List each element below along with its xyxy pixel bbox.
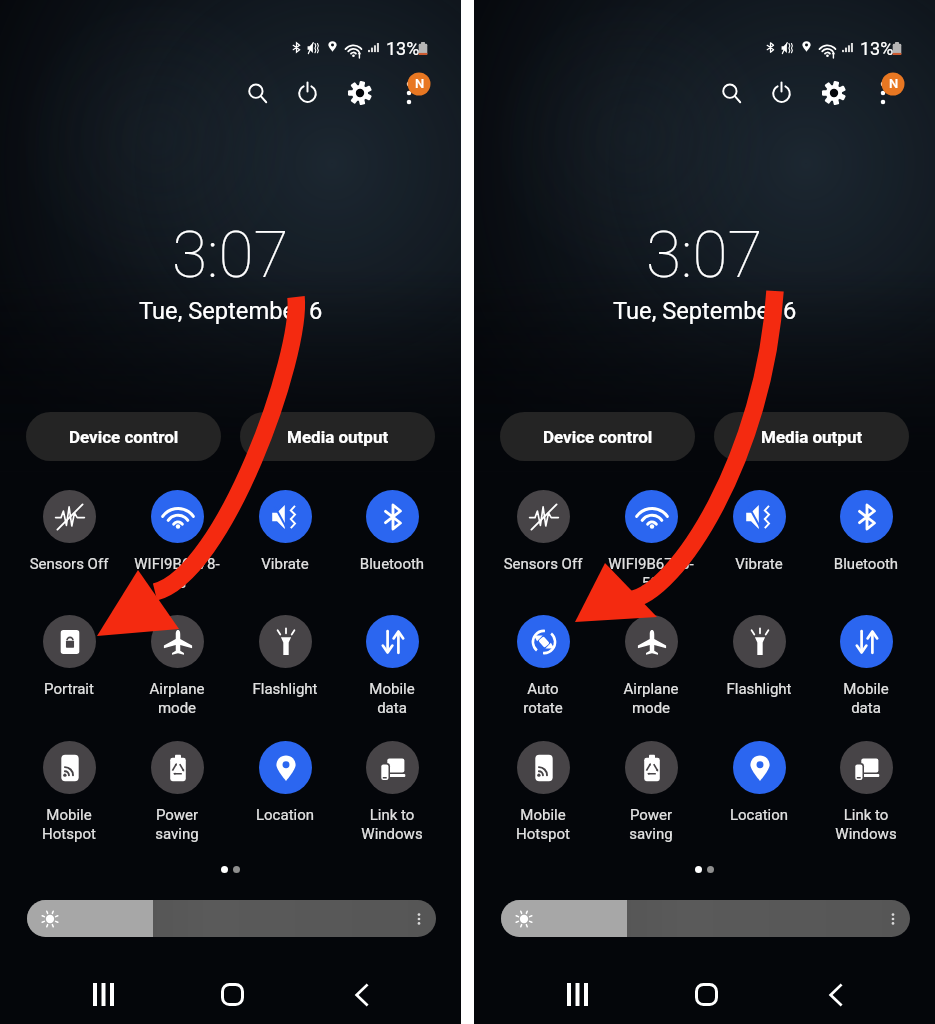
button[interactable]: [517, 490, 570, 543]
staticText: Airplane mode: [124, 680, 230, 717]
staticText: Mobile Hotspot: [490, 806, 596, 843]
button[interactable]: [366, 615, 419, 668]
staticText: 3:07: [172, 218, 289, 293]
button[interactable]: Settings: [340, 73, 380, 113]
staticText: Power saving: [124, 806, 230, 843]
button[interactable]: Brightness: [501, 900, 910, 937]
button[interactable]: [43, 490, 96, 543]
staticText: Device control: [69, 427, 179, 447]
button[interactable]: [151, 615, 204, 668]
button[interactable]: Page 1: [221, 866, 228, 873]
button[interactable]: Page 2: [707, 866, 714, 873]
button[interactable]: Page 2: [233, 866, 240, 873]
staticText: Location: [706, 806, 812, 824]
staticText: Flashlight: [232, 680, 338, 698]
button[interactable]: [259, 741, 312, 794]
button[interactable]: [517, 741, 570, 794]
staticText: Airplane mode: [598, 680, 704, 717]
staticText: 13%: [860, 38, 894, 59]
staticText: N: [889, 76, 899, 91]
button[interactable]: More options: [863, 73, 903, 113]
button[interactable]: [840, 741, 893, 794]
button[interactable]: Media output: [714, 412, 909, 461]
staticText: Bluetooth: [339, 555, 445, 573]
staticText: Portrait: [16, 680, 122, 698]
staticText: Device control: [543, 427, 653, 447]
staticText: Media output: [761, 427, 863, 447]
staticText: Flashlight: [706, 680, 812, 698]
button[interactable]: [366, 741, 419, 794]
button[interactable]: Power off: [287, 72, 327, 112]
button[interactable]: Device control: [500, 412, 695, 461]
staticText: Link to Windows: [813, 806, 919, 843]
staticText: 13%: [386, 38, 420, 59]
button[interactable]: Power off: [761, 72, 801, 112]
button[interactable]: Page 1: [695, 866, 702, 873]
staticText: Vibrate: [232, 555, 338, 573]
staticText: Mobile Hotspot: [16, 806, 122, 843]
button[interactable]: Search: [711, 73, 751, 113]
staticText: Mobile data: [813, 680, 919, 717]
staticText: Sensors Off: [16, 555, 122, 573]
button[interactable]: [151, 490, 204, 543]
button[interactable]: [733, 490, 786, 543]
staticText: N: [415, 76, 425, 91]
button[interactable]: [840, 615, 893, 668]
button[interactable]: [517, 615, 570, 668]
staticText: Media output: [287, 427, 389, 447]
button[interactable]: [625, 490, 678, 543]
button[interactable]: [43, 741, 96, 794]
staticText: Bluetooth: [813, 555, 919, 573]
button[interactable]: Recents: [79, 970, 127, 1018]
button[interactable]: [733, 741, 786, 794]
button[interactable]: Back: [337, 971, 385, 1019]
button[interactable]: [259, 615, 312, 668]
staticText: Power saving: [598, 806, 704, 843]
staticText: Mobile data: [339, 680, 445, 717]
button[interactable]: Back: [811, 971, 859, 1019]
button[interactable]: Brightness: [27, 900, 436, 937]
staticText: WIFI9B6778- 5G: [124, 555, 230, 592]
staticText: Vibrate: [706, 555, 812, 573]
staticText: WIFI9B6778- 5G: [598, 555, 704, 592]
button[interactable]: Media output: [240, 412, 435, 461]
button[interactable]: Home: [682, 970, 730, 1018]
button[interactable]: Device control: [26, 412, 221, 461]
button[interactable]: Home: [208, 970, 256, 1018]
staticText: Location: [232, 806, 338, 824]
button[interactable]: [366, 490, 419, 543]
button[interactable]: [625, 615, 678, 668]
staticText: Link to Windows: [339, 806, 445, 843]
button[interactable]: Search: [237, 73, 277, 113]
button[interactable]: Recents: [553, 970, 601, 1018]
button[interactable]: [840, 490, 893, 543]
button[interactable]: [151, 741, 204, 794]
staticText: 3:07: [646, 218, 763, 293]
button[interactable]: Settings: [814, 73, 854, 113]
staticText: Tue, September 6: [613, 297, 797, 325]
button[interactable]: [43, 615, 96, 668]
button[interactable]: More options: [389, 73, 429, 113]
staticText: Tue, September 6: [139, 297, 323, 325]
button[interactable]: [625, 741, 678, 794]
staticText: Auto rotate: [490, 680, 596, 717]
staticText: Sensors Off: [490, 555, 596, 573]
button[interactable]: [259, 490, 312, 543]
button[interactable]: [733, 615, 786, 668]
